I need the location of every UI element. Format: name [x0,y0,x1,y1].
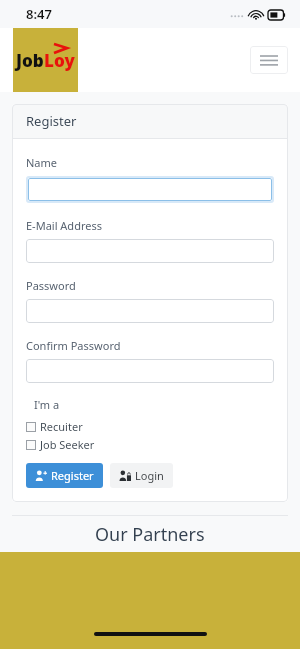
staticText: Our Partners [95,522,205,547]
button[interactable]: Login [119,468,164,483]
staticText: Password [26,278,76,293]
button[interactable]: Recuiter [26,419,274,434]
staticText: Login [135,468,164,483]
staticText: Loy [44,49,75,72]
button[interactable] [26,299,274,323]
staticText: Register [51,468,94,483]
staticText: Job Seeker [40,437,95,452]
staticText: Name [26,155,58,170]
staticText: I'm a [34,397,60,412]
button[interactable]: Register [35,468,94,483]
staticText: Confirm Password [26,338,121,353]
staticText: Register [26,112,77,130]
staticText: 8:47 [26,5,52,23]
button[interactable] [26,239,274,263]
staticText: Recuiter [40,419,83,434]
staticText: E-Mail Address [26,218,102,233]
button[interactable]: Menu [250,46,288,74]
button[interactable] [26,359,274,383]
button[interactable]: Job Seeker [26,437,274,452]
button[interactable] [28,178,272,201]
button[interactable]: JobLoy home [13,28,78,92]
staticText: Job [16,49,44,72]
